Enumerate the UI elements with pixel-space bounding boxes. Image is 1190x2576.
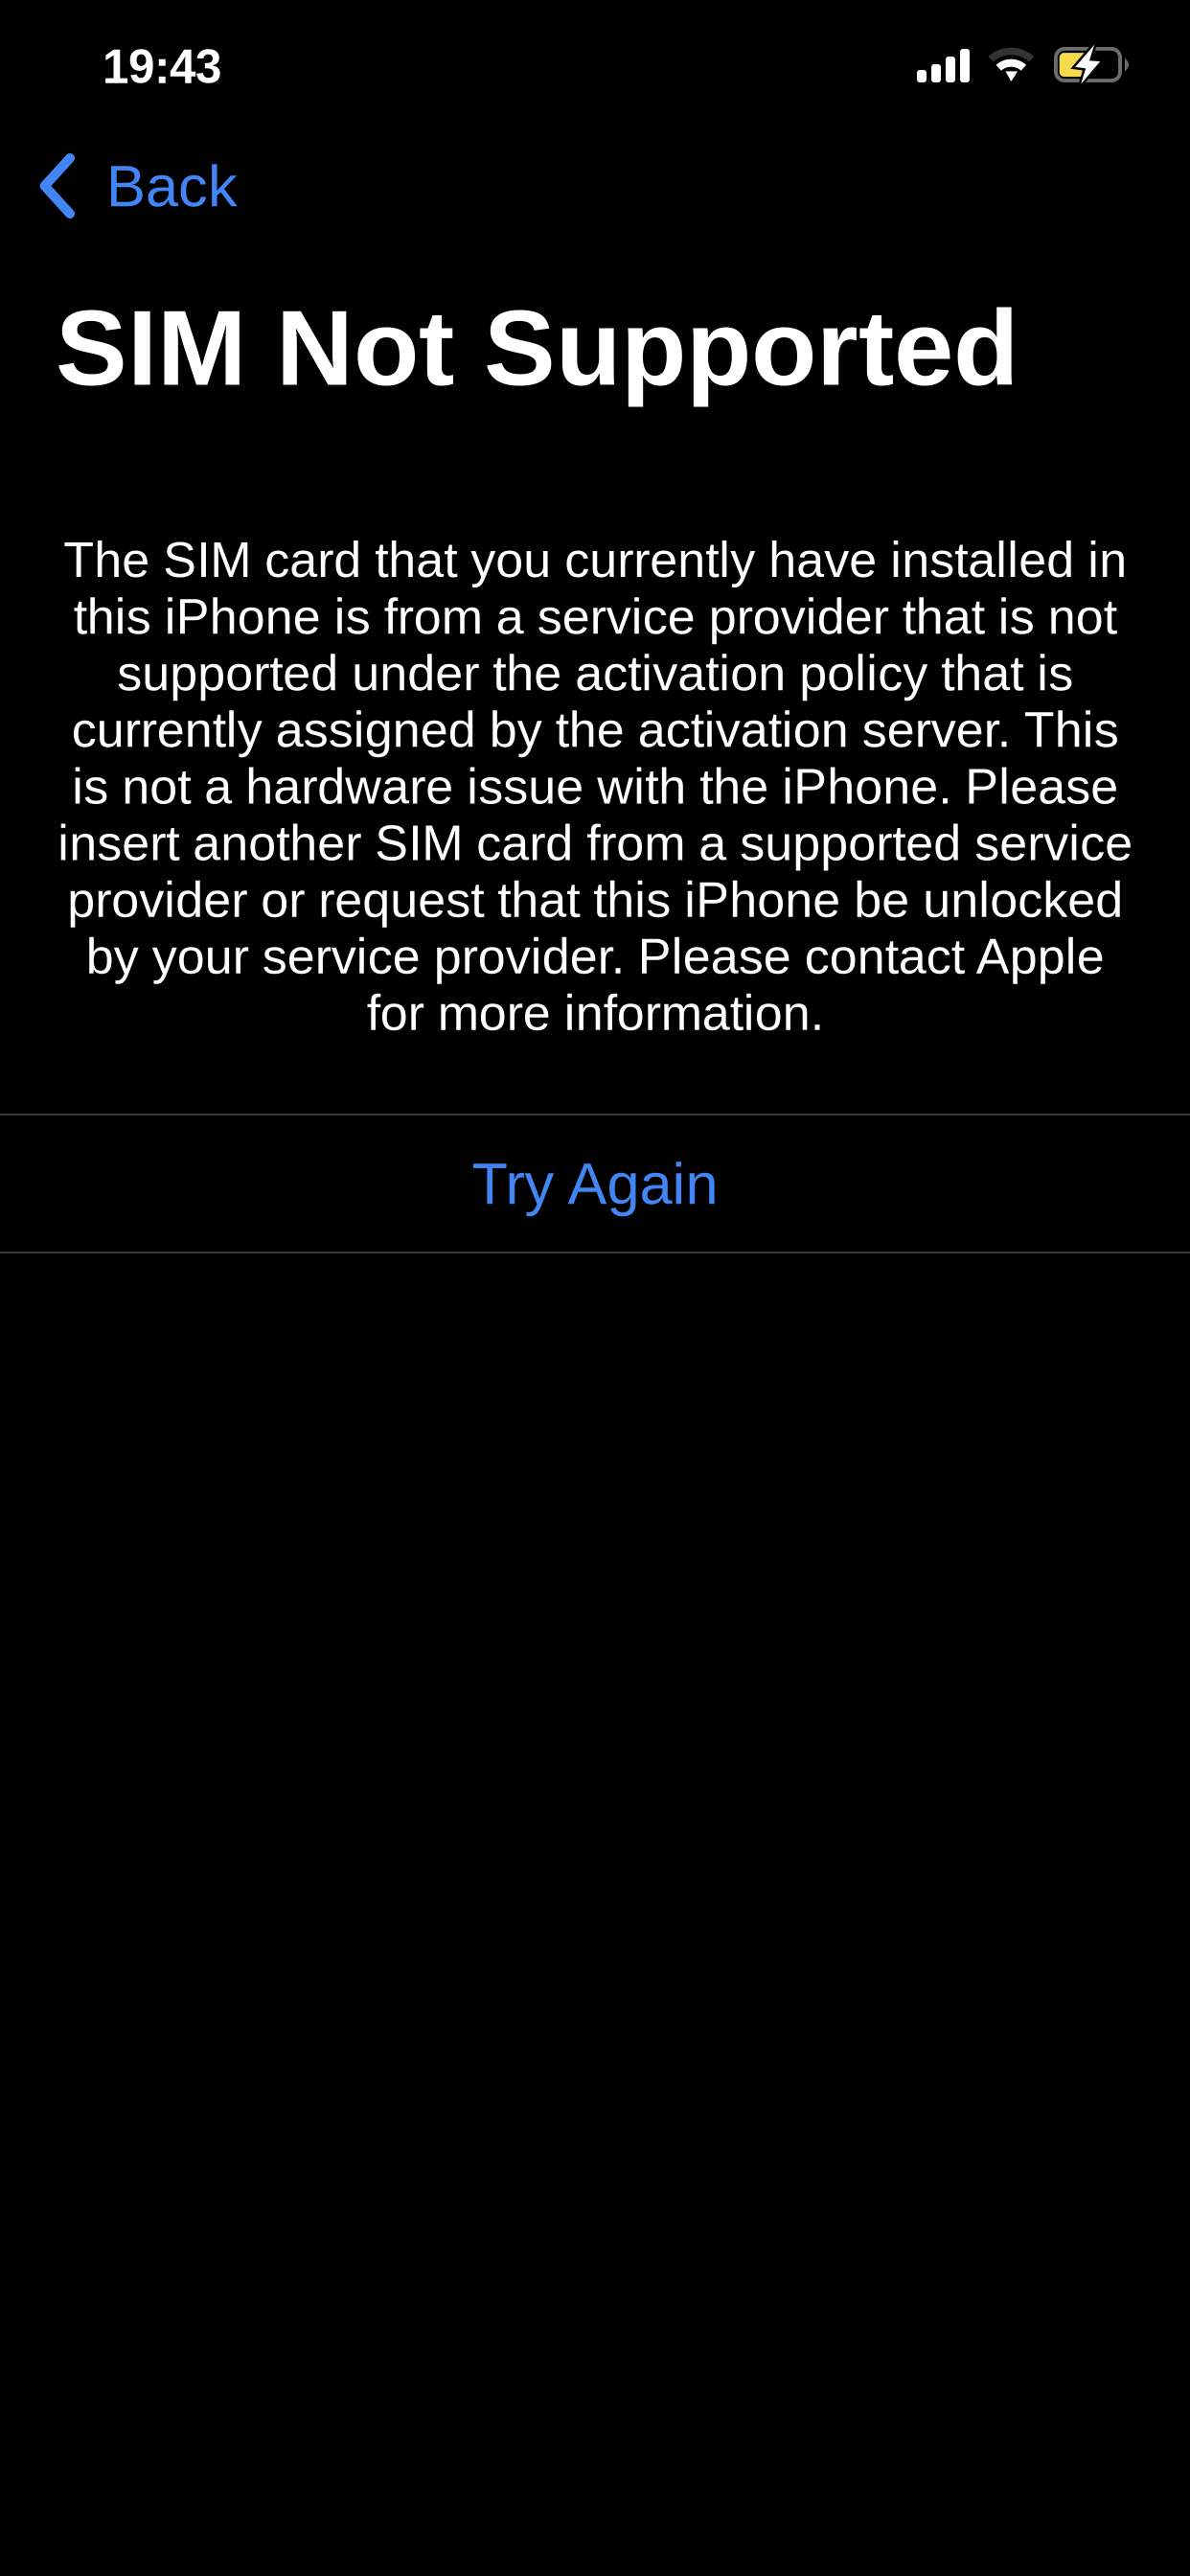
staticText: 19:43	[103, 40, 221, 93]
button[interactable]: Try Again	[0, 1114, 1190, 1253]
staticText: The SIM card that you currently have ins…	[57, 532, 1133, 1041]
staticText: SIM Not Supported	[56, 287, 1018, 407]
staticText: Try Again	[472, 1151, 718, 1216]
button[interactable]: Back	[35, 140, 281, 232]
staticText: Back	[106, 153, 238, 219]
